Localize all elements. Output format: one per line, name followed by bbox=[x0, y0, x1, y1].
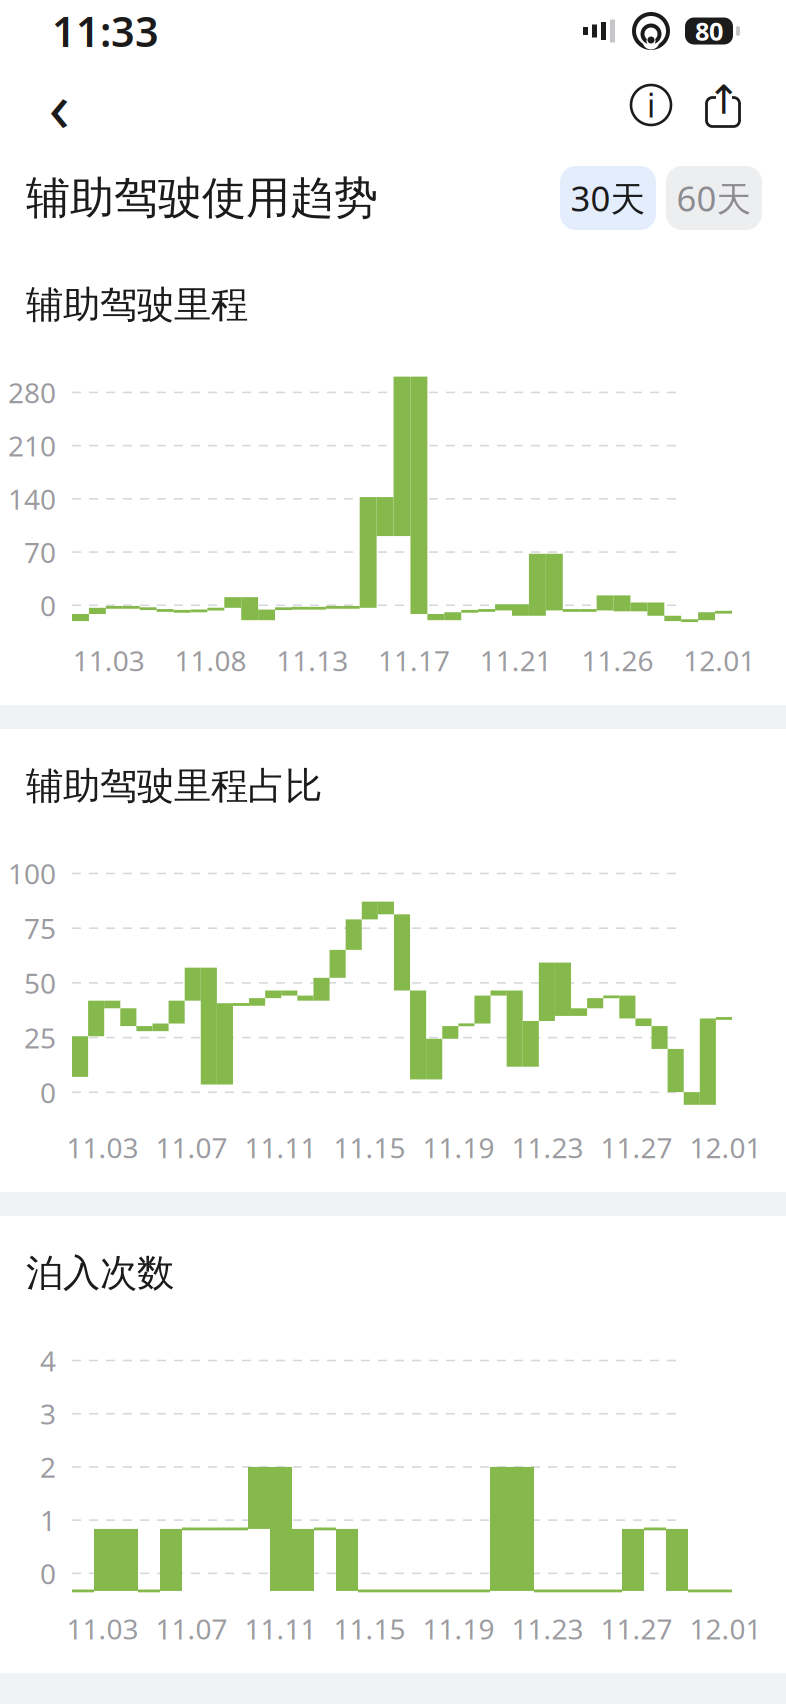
staticText: 11.21 bbox=[480, 642, 552, 679]
staticText: 1 bbox=[40, 1501, 56, 1539]
staticText: 0 bbox=[40, 1555, 56, 1592]
staticText: 11.07 bbox=[155, 1129, 227, 1166]
staticText: 11.27 bbox=[600, 1610, 672, 1647]
staticText: 0 bbox=[40, 1074, 56, 1111]
staticText: 11.08 bbox=[175, 642, 247, 679]
staticText: 11.17 bbox=[378, 642, 450, 679]
staticText: 280 bbox=[8, 374, 56, 411]
staticText: 2 bbox=[40, 1448, 56, 1485]
staticText: 12.01 bbox=[683, 642, 755, 679]
staticText: 4 bbox=[40, 1342, 56, 1379]
staticText: 11.26 bbox=[581, 642, 653, 679]
button[interactable]: Info bbox=[622, 76, 680, 134]
staticText: 3 bbox=[40, 1395, 56, 1432]
staticText: 11.07 bbox=[155, 1610, 227, 1647]
staticText: 140 bbox=[8, 480, 56, 517]
staticText: 210 bbox=[8, 427, 56, 464]
button[interactable]: 30天 bbox=[560, 166, 656, 230]
staticText: 30天 bbox=[570, 175, 645, 221]
staticText: 25 bbox=[24, 1019, 56, 1056]
button[interactable]: Share bbox=[694, 76, 752, 134]
staticText: 11.03 bbox=[66, 1129, 138, 1166]
staticText: 11.15 bbox=[333, 1610, 405, 1647]
staticText: ↑ bbox=[707, 77, 741, 123]
staticText: 11.11 bbox=[244, 1610, 316, 1647]
staticText: 0 bbox=[40, 587, 56, 624]
staticText: i bbox=[647, 84, 655, 126]
staticText: 11.19 bbox=[422, 1129, 494, 1166]
button[interactable]: 60天 bbox=[666, 166, 762, 230]
staticText: 11.13 bbox=[276, 642, 348, 679]
staticText: 75 bbox=[24, 910, 56, 947]
staticText: 11.27 bbox=[600, 1129, 672, 1166]
staticText: 辅助驾驶使用趋势 bbox=[26, 171, 378, 225]
staticText: 11.19 bbox=[422, 1610, 494, 1647]
staticText: 11:33 bbox=[52, 4, 159, 58]
staticText: 50 bbox=[24, 964, 56, 1001]
staticText: 12.01 bbox=[689, 1610, 761, 1647]
staticText: 辅助驾驶里程 bbox=[26, 282, 248, 328]
staticText: 泊入次数 bbox=[26, 1250, 174, 1296]
staticText: 11.03 bbox=[73, 642, 145, 679]
staticText: 11.23 bbox=[511, 1610, 583, 1647]
staticText: 100 bbox=[8, 855, 56, 892]
staticText: 11.03 bbox=[66, 1610, 138, 1647]
staticText: 80 bbox=[695, 14, 723, 48]
staticText: 12.01 bbox=[689, 1129, 761, 1166]
button[interactable]: Back bbox=[30, 74, 88, 136]
staticText: ‹ bbox=[48, 59, 69, 151]
staticText: 11.23 bbox=[511, 1129, 583, 1166]
staticText: 辅助驾驶里程占比 bbox=[26, 763, 322, 809]
staticText: 11.11 bbox=[244, 1129, 316, 1166]
staticText: 70 bbox=[24, 533, 56, 571]
staticText: 11.15 bbox=[333, 1129, 405, 1166]
staticText: 60天 bbox=[676, 175, 751, 221]
